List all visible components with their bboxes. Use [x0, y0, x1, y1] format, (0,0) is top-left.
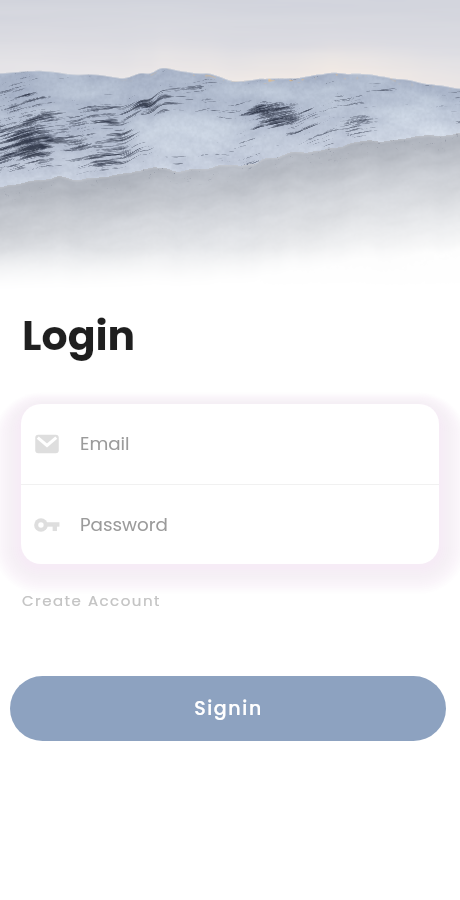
button[interactable]: Signin	[10, 676, 446, 741]
button[interactable]: Password field	[21, 485, 439, 564]
button[interactable]: Create Account	[22, 590, 161, 611]
staticText: Create Account	[22, 590, 161, 611]
button[interactable]: Email field	[21, 404, 439, 484]
staticText: Email	[80, 431, 130, 457]
staticText: Signin	[194, 695, 263, 722]
other: Email field	[35, 431, 61, 457]
staticText: Password	[80, 512, 168, 538]
staticText: Login	[22, 307, 136, 364]
image: Mountain landscape	[0, 0, 460, 290]
other: Password field	[35, 512, 61, 538]
